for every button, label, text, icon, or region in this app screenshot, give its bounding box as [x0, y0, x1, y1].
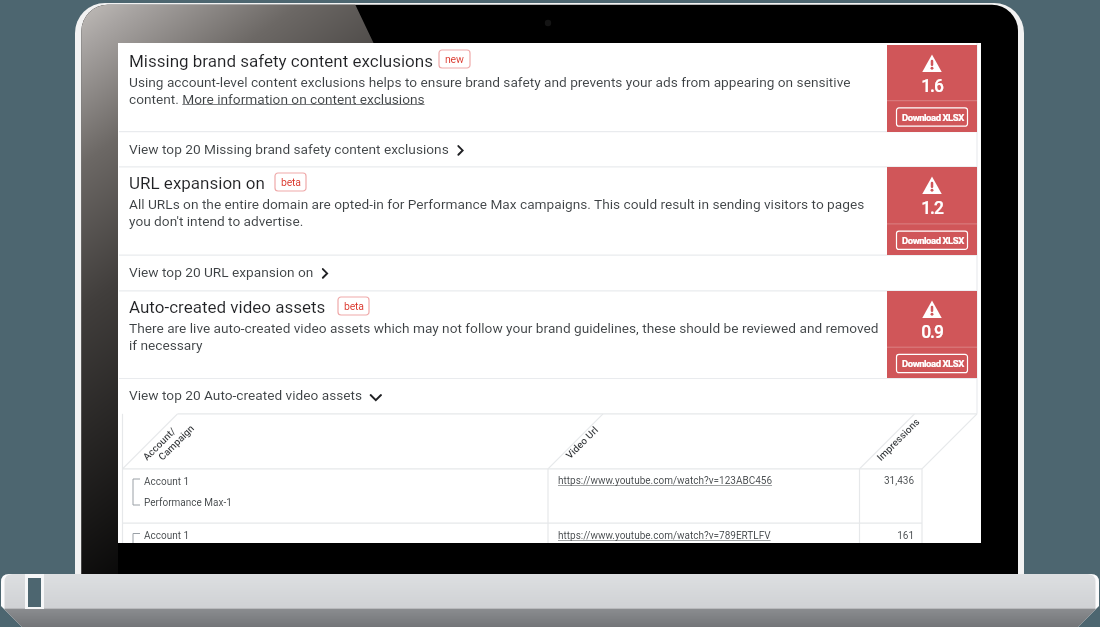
staticText: Account 1	[144, 530, 190, 542]
staticText: Missing brand safety content exclusions	[129, 51, 433, 71]
button[interactable]: Download XLSX	[897, 354, 968, 372]
button[interactable]: https://www.youtube.com/watch?v=123ABC45…	[558, 472, 788, 486]
staticText: View top 20 Missing brand safety content…	[129, 141, 449, 157]
staticText: 31,436	[883, 475, 914, 487]
staticText: beta	[344, 300, 364, 312]
button[interactable]: Download XLSX	[897, 231, 968, 249]
staticText: if necessary	[129, 337, 203, 353]
button[interactable]: More information on content exclusions	[182, 91, 425, 107]
staticText: View top 20 Auto-created video assets	[129, 387, 363, 403]
button[interactable]: URL expansion on	[119, 167, 887, 255]
staticText: 0.9	[887, 322, 977, 409]
staticText: https://www.youtube.com/watch?v=789ERTLF…	[558, 530, 771, 542]
button[interactable]: Severity 0.9 warning	[887, 291, 977, 378]
button[interactable]: Severity 1.6 warning	[887, 45, 977, 132]
staticText: Account 1	[144, 476, 190, 488]
staticText: Performance Max-1	[144, 497, 232, 509]
staticText: Auto-created video assets	[129, 297, 326, 317]
button[interactable]: View top 20 Auto-created video assets	[119, 379, 977, 414]
button[interactable]: View top 20 Missing brand safety content…	[119, 132, 977, 167]
staticText: content. More information on content exc…	[129, 91, 425, 107]
staticText: new	[445, 53, 464, 65]
staticText: you don't intend to advertise.	[129, 213, 304, 229]
staticText: 1.2	[887, 198, 977, 286]
button[interactable]: Severity 1.2 warning	[887, 167, 977, 255]
staticText: Download XLSX	[902, 358, 964, 369]
staticText: Using account-level content exclusions h…	[129, 74, 851, 90]
button[interactable]: Download XLSX	[897, 108, 968, 126]
staticText: Download XLSX	[902, 112, 964, 123]
staticText: beta	[281, 176, 301, 188]
button[interactable]: Auto-created video assets	[119, 291, 887, 379]
button[interactable]: Missing brand safety content exclusions	[119, 43, 887, 132]
staticText: There are live auto-created video assets…	[129, 320, 879, 336]
staticText: URL expansion on	[129, 173, 265, 193]
staticText: 161	[897, 530, 914, 542]
staticText: https://www.youtube.com/watch?v=123ABC45…	[558, 475, 773, 487]
button[interactable]: https://www.youtube.com/watch?v=789ERTLF…	[558, 527, 788, 541]
staticText: 1.6	[887, 76, 977, 163]
staticText: Download XLSX	[902, 235, 964, 246]
staticText: View top 20 URL expansion on	[129, 264, 314, 280]
staticText: All URLs on the entire domain are opted-…	[129, 196, 865, 212]
button[interactable]: View top 20 URL expansion on	[119, 255, 977, 291]
